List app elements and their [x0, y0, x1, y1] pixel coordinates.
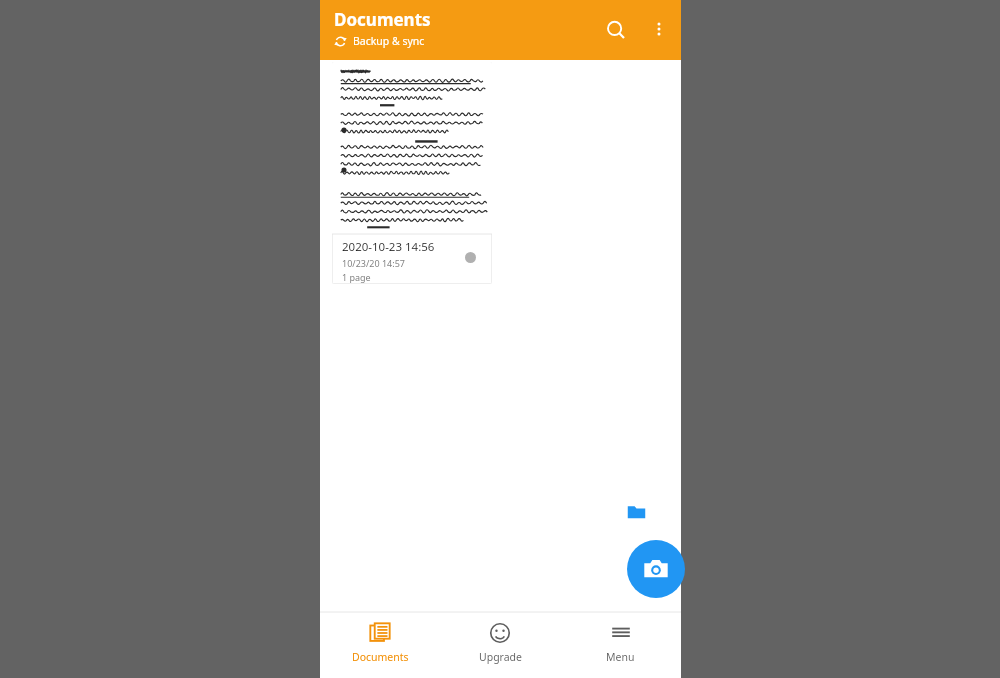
button[interactable]: New folder: [615, 490, 657, 532]
staticText: 10/23/20 14:57: [342, 257, 405, 269]
button[interactable]: Search: [600, 14, 632, 46]
staticText: Documents: [352, 650, 409, 664]
button[interactable]: Documents: [320, 612, 440, 678]
staticText: Upgrade: [479, 650, 522, 664]
staticText: Documents: [334, 8, 431, 31]
staticText: 2020-10-23 14:56: [342, 239, 435, 255]
button[interactable]: Upgrade: [440, 612, 560, 678]
staticText: Menu: [606, 650, 635, 664]
button[interactable]: Document options: [465, 252, 476, 263]
button[interactable]: 2020-10-23 14:56: [332, 62, 492, 284]
button[interactable]: Menu: [560, 612, 681, 678]
button[interactable]: Scan with camera: [627, 540, 685, 598]
button[interactable]: More options: [644, 14, 674, 44]
staticText: 1 page: [342, 271, 371, 283]
staticText: Backup & sync: [353, 34, 425, 48]
